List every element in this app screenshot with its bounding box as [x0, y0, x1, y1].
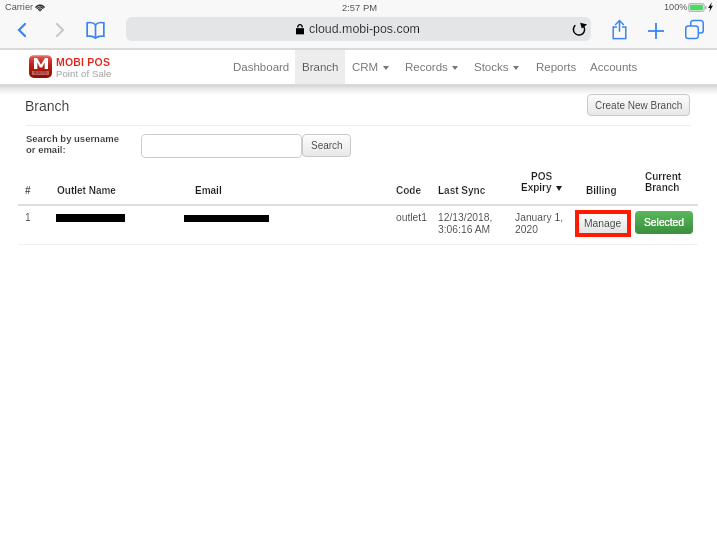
staticText: Point of Sale — [56, 68, 112, 79]
staticText: 100% — [664, 2, 688, 12]
button[interactable]: Branch — [295, 49, 345, 84]
staticText: Carrier — [5, 2, 34, 12]
staticText: Manage — [584, 218, 622, 230]
staticText: 12/13/2018, — [438, 212, 493, 224]
button[interactable] — [141, 134, 302, 158]
button[interactable]: MOBI POS — [56, 56, 112, 79]
staticText: or email: — [26, 144, 66, 155]
button[interactable]: Back — [7, 16, 37, 43]
button[interactable]: New Tab — [641, 16, 671, 45]
staticText: 2:57 PM — [342, 2, 377, 13]
staticText: Dashboard — [233, 61, 290, 74]
staticText: Code — [396, 185, 421, 196]
button[interactable]: Search — [302, 134, 351, 157]
button[interactable]: cloud.mobi-pos.com — [126, 17, 591, 41]
button[interactable]: Reload — [570, 20, 588, 38]
button[interactable]: Accounts — [583, 49, 644, 84]
button[interactable]: Dashboard — [227, 49, 295, 84]
staticText: Branch — [645, 182, 680, 193]
staticText: 2020 — [515, 224, 538, 236]
button[interactable]: CRM — [345, 49, 395, 84]
staticText: Last Sync — [438, 185, 486, 196]
staticText: Search by username — [26, 133, 119, 144]
staticText: Email — [195, 185, 222, 196]
button[interactable]: Selected — [635, 211, 693, 234]
staticText: CRM — [352, 61, 379, 74]
staticText: Current — [645, 171, 682, 182]
staticText: MOBI POS — [56, 56, 111, 68]
button[interactable]: MOBI POS — [29, 55, 52, 78]
button[interactable]: Records — [398, 49, 464, 84]
button[interactable]: Tabs — [679, 15, 709, 44]
button[interactable]: Create New Branch — [587, 94, 690, 116]
button[interactable]: Bookmarks — [80, 17, 110, 44]
button[interactable]: Reports — [529, 49, 583, 84]
staticText: Create New Branch — [595, 100, 683, 111]
staticText: January 1, — [515, 212, 564, 224]
button[interactable]: Manage — [579, 214, 627, 233]
staticText: Search — [311, 140, 343, 151]
staticText: # — [25, 185, 31, 196]
staticText: cloud.mobi-pos.com — [309, 22, 420, 36]
button[interactable]: Share — [604, 15, 634, 44]
staticText: outlet1 — [396, 212, 427, 224]
staticText: Selected — [644, 217, 685, 229]
staticText: POS — [531, 171, 553, 182]
staticText: MOBI POS — [34, 72, 47, 75]
staticText: Outlet Name — [57, 185, 116, 196]
staticText: Branch — [302, 61, 339, 74]
staticText: Billing — [586, 185, 617, 196]
staticText: Reports — [536, 61, 577, 74]
staticText: Accounts — [590, 61, 638, 74]
button[interactable]: Forward — [45, 16, 75, 43]
staticText: Stocks — [474, 61, 509, 74]
staticText: Branch — [25, 98, 70, 114]
staticText: 1 — [25, 212, 31, 224]
staticText: Expiry — [521, 182, 552, 193]
staticText: Records — [405, 61, 448, 74]
staticText: 3:06:16 AM — [438, 224, 491, 236]
button[interactable]: Stocks — [467, 49, 525, 84]
